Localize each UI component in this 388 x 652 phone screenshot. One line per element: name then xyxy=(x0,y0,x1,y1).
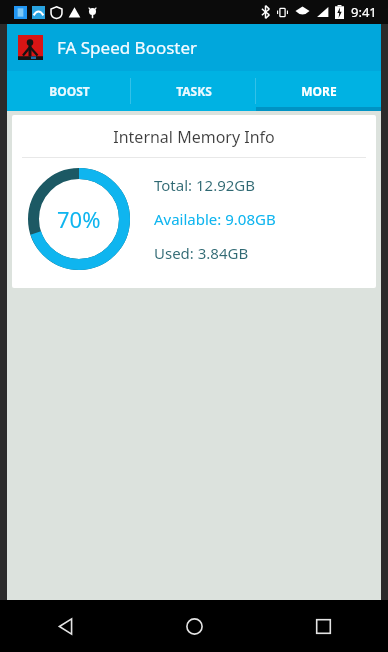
button[interactable]: Recent apps xyxy=(259,600,388,652)
staticText: MORE xyxy=(301,83,337,99)
staticText: FA Speed Booster xyxy=(57,36,198,59)
button[interactable]: TASKS xyxy=(131,71,256,111)
button[interactable]: Home xyxy=(130,600,259,652)
button[interactable]: BOOST xyxy=(7,71,131,111)
staticText: Total: 12.92GB xyxy=(154,175,255,195)
staticText: 9:41 xyxy=(351,3,377,21)
staticText: BOOST xyxy=(49,83,90,99)
staticText: Used: 3.84GB xyxy=(154,243,249,263)
staticText: TASKS xyxy=(176,83,212,99)
staticText: Internal Memory Info xyxy=(12,126,376,148)
staticText: Available: 9.08GB xyxy=(154,209,276,229)
button[interactable]: Back xyxy=(0,600,130,652)
button[interactable]: MORE xyxy=(256,71,381,111)
staticText: 70% xyxy=(57,204,101,234)
